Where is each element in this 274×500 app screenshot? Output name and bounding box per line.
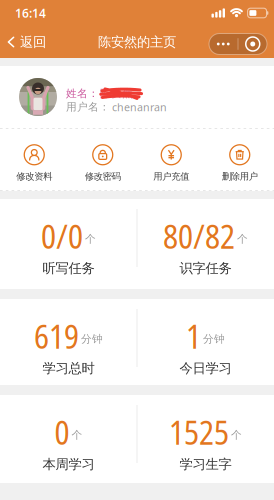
staticText: 分钟 [203,332,225,346]
staticText: 16:14 [15,5,46,21]
staticText: chenanran [112,100,167,114]
staticText: 用户充值 [153,171,189,182]
button[interactable]: 用户充值 [137,145,205,182]
staticText: 陈安然的主页 [98,34,176,50]
staticText: 分钟 [81,332,103,346]
staticText: 619 [34,314,79,358]
staticText: 修改资料 [16,171,52,182]
button[interactable]: More [209,33,237,54]
staticText: 修改密码 [85,171,121,182]
staticText: 用户名： [66,100,110,114]
staticText: 返回 [20,34,46,50]
staticText: 个 [231,428,242,442]
staticText: 识字任务 [179,260,231,276]
staticText: 1525 [169,410,229,454]
staticText: 1 [186,314,201,358]
staticText: 本周学习 [42,456,94,472]
staticText: 删除用户 [222,171,258,182]
staticText: 0 [54,410,69,454]
staticText: 80/82 [163,214,235,258]
staticText: 个 [237,232,248,246]
button[interactable]: Close mini program [238,33,267,54]
button[interactable]: 删除用户 [205,145,274,182]
staticText: 学习总时 [42,360,94,376]
staticText: 今日学习 [179,360,231,376]
staticText: 学习生字 [179,456,231,472]
button[interactable]: Back [0,34,46,50]
staticText: 0/0 [41,214,83,258]
staticText: 陈安然 [100,87,133,100]
button[interactable]: 修改密码 [68,145,137,182]
button[interactable]: 修改资料 [0,145,68,182]
staticText: 个 [71,428,82,442]
staticText: 个 [85,232,96,246]
staticText: 姓名： [66,87,99,100]
staticText: 听写任务 [42,260,94,276]
